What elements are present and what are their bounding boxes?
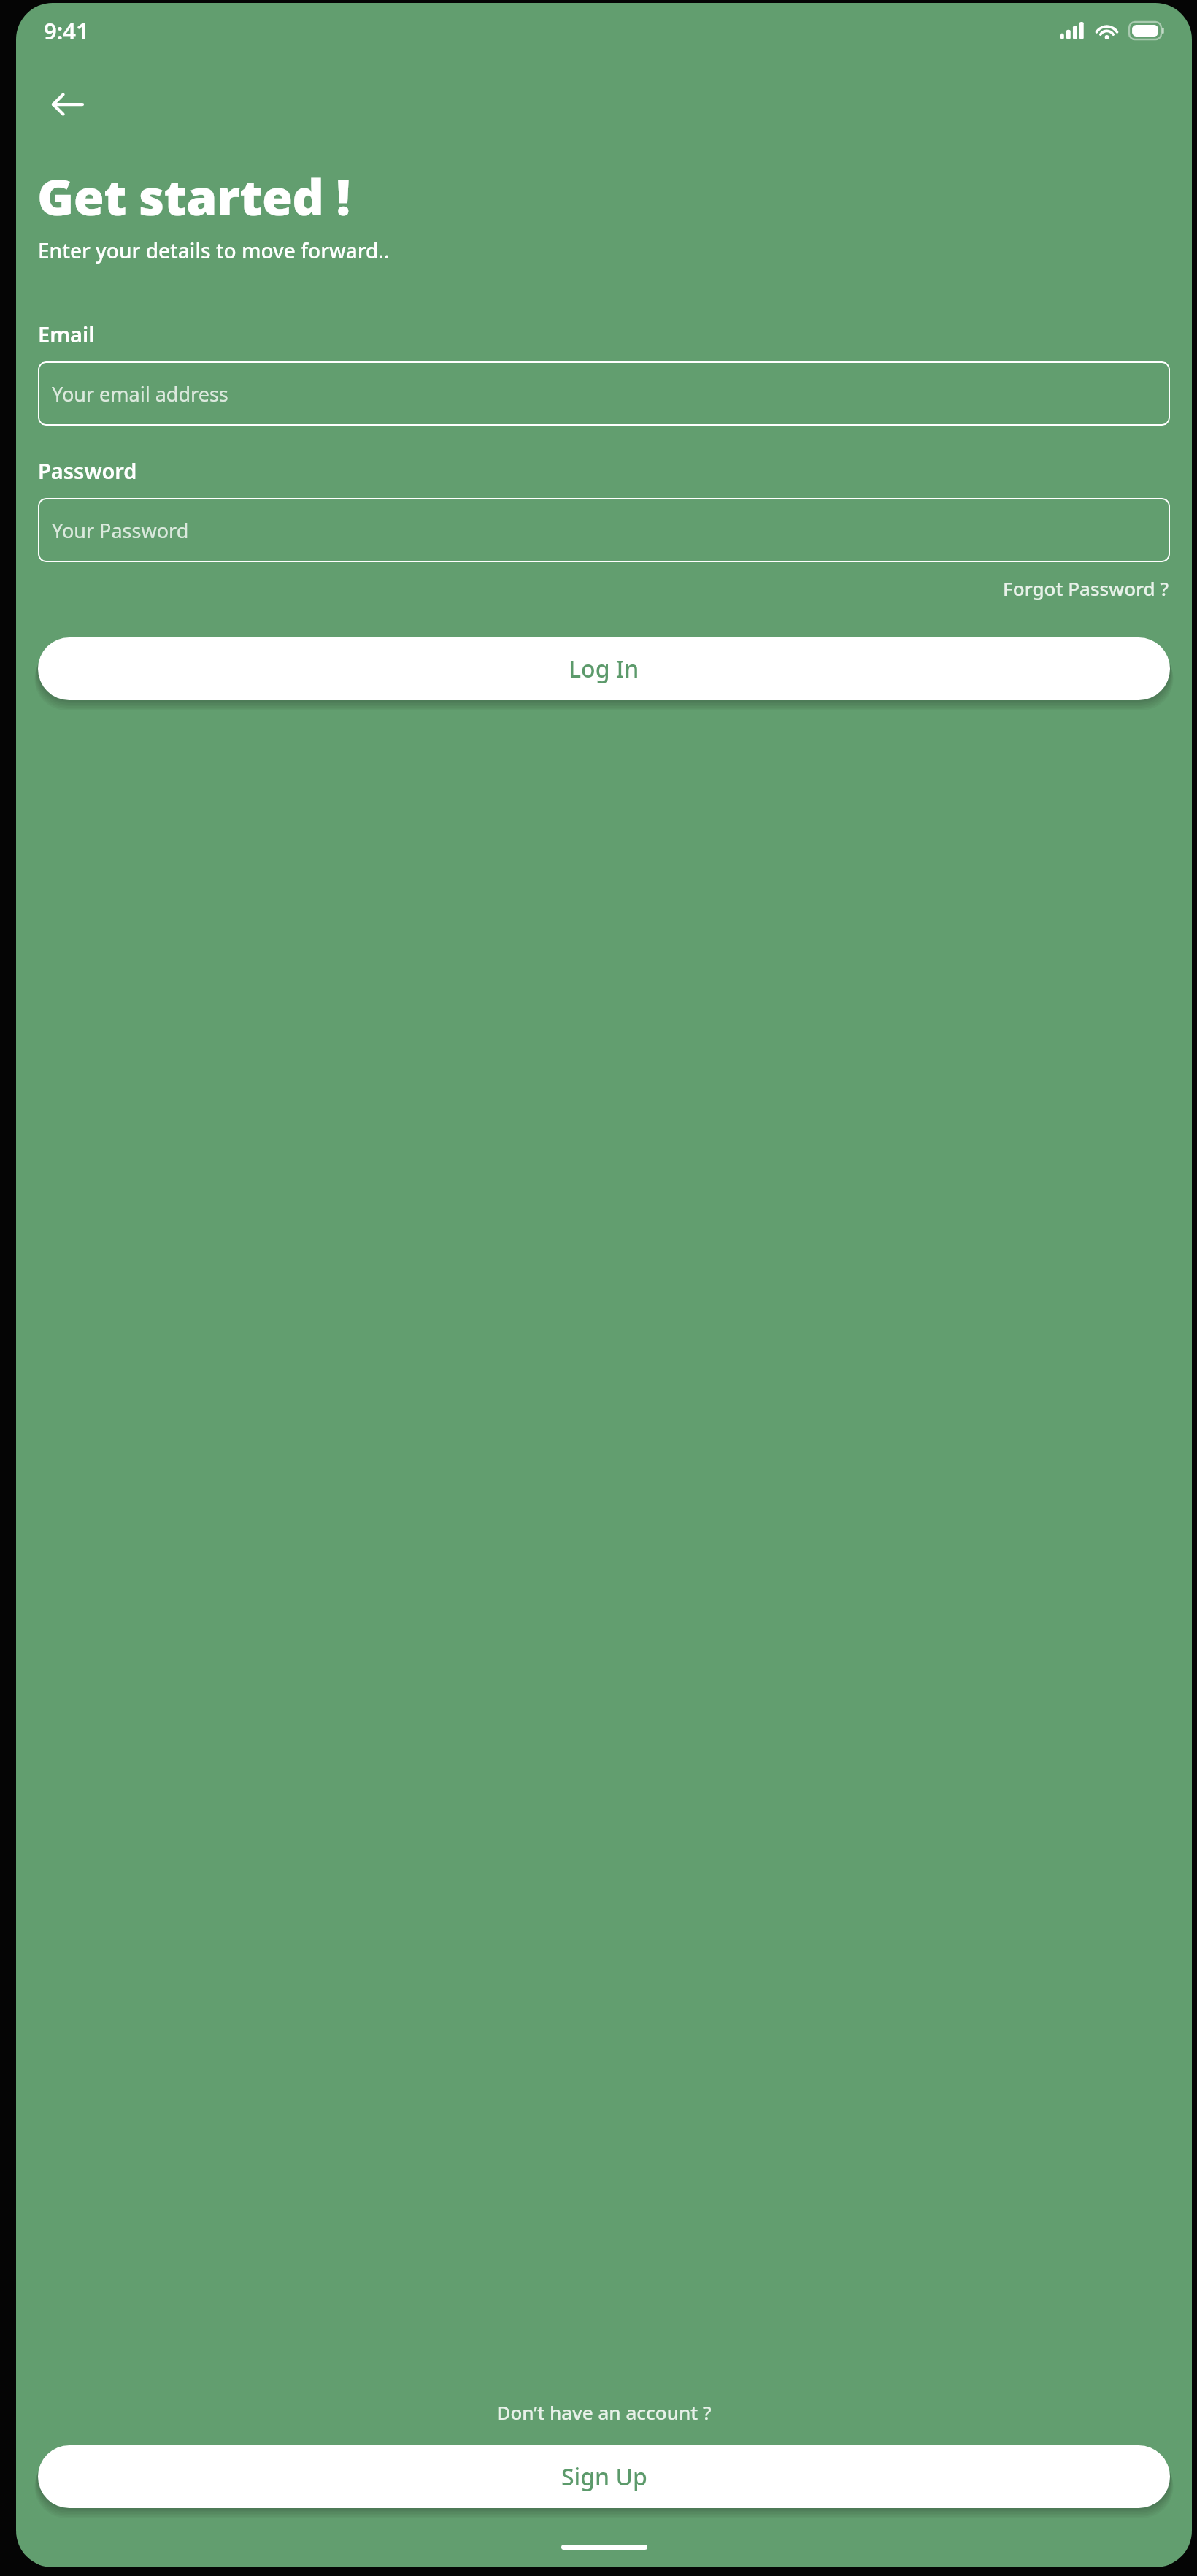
button[interactable]: Back (48, 85, 88, 124)
staticText: Your Password (52, 517, 189, 544)
staticText: Sign Up (561, 2461, 647, 2493)
button[interactable]: Sign Up (38, 2445, 1170, 2508)
staticText: 9:41 (44, 15, 89, 46)
staticText: Get started ! (37, 162, 350, 230)
button[interactable]: Your Password (38, 498, 1170, 562)
staticText: Your email address (52, 380, 228, 407)
staticText: Don’t have an account ? (38, 2399, 1170, 2425)
button[interactable]: Your email address (38, 361, 1170, 426)
button[interactable]: Log In (38, 637, 1170, 700)
staticText: Enter your details to move forward.. (38, 237, 390, 264)
button[interactable]: Forgot Password ? (1001, 572, 1170, 604)
staticText: Password (38, 456, 137, 485)
staticText: Log In (569, 653, 639, 685)
staticText: Email (38, 320, 95, 348)
